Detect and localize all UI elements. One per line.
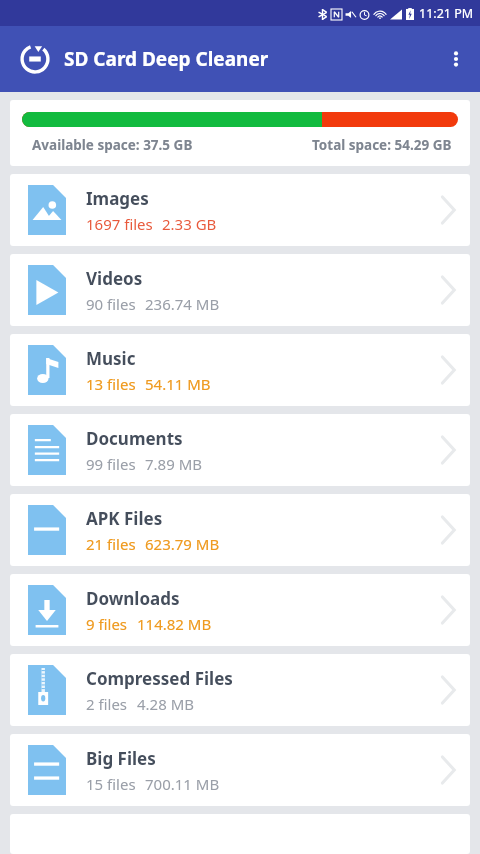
staticText: Big Files (86, 747, 156, 770)
staticText: APK Files (86, 507, 163, 530)
button[interactable]: Music (10, 334, 470, 406)
staticText: Music (86, 347, 136, 370)
staticText: 11:21 PM (419, 5, 474, 22)
staticText: Downloads (86, 587, 180, 610)
staticText: 236.74 MB (145, 294, 220, 314)
staticText: 623.79 MB (145, 534, 220, 554)
staticText: 7.89 MB (145, 454, 203, 474)
staticText: Videos (86, 267, 143, 290)
staticText: 2 files (86, 694, 128, 714)
staticText: 99 files (86, 454, 136, 474)
staticText: 4.28 MB (137, 694, 195, 714)
button[interactable]: Images (10, 174, 470, 246)
staticText: 90 files (86, 294, 136, 314)
staticText: 21 files (86, 534, 136, 554)
button[interactable]: Compressed Files (10, 654, 470, 726)
button[interactable]: More options (432, 35, 480, 83)
button[interactable]: Documents (10, 414, 470, 486)
staticText: Documents (86, 427, 183, 450)
staticText: 700.11 MB (145, 774, 220, 794)
staticText: Available space: 37.5 GB (32, 136, 193, 154)
staticText: 15 files (86, 774, 136, 794)
staticText: 54.11 MB (145, 374, 211, 394)
button[interactable]: APK Files (10, 494, 470, 566)
button[interactable]: Available space: 37.5 GB (10, 100, 470, 166)
staticText: Compressed Files (86, 667, 233, 690)
staticText: Images (86, 187, 149, 210)
button[interactable]: Downloads (10, 574, 470, 646)
staticText: SD Card Deep Cleaner (64, 46, 269, 72)
staticText: 114.82 MB (137, 614, 212, 634)
button[interactable]: Videos (10, 254, 470, 326)
staticText: 1697 files (86, 214, 153, 234)
staticText: Total space: 54.29 GB (312, 136, 452, 154)
staticText: 9 files (86, 614, 128, 634)
staticText: 13 files (86, 374, 136, 394)
button[interactable]: Big Files (10, 734, 470, 806)
staticText: 2.33 GB (162, 214, 217, 234)
